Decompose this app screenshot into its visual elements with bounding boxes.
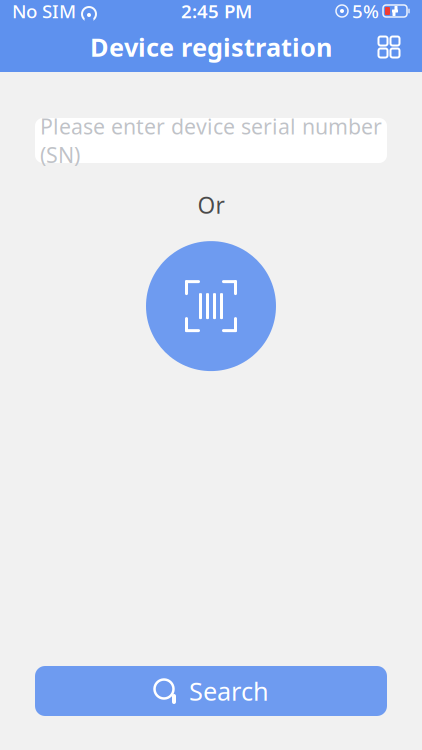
button[interactable]: Apps <box>367 25 411 69</box>
staticText: Search <box>189 674 269 708</box>
staticText: 2:45 PM <box>181 0 252 23</box>
button[interactable]: Search <box>35 666 387 716</box>
button[interactable]: Please enter device serial number (SN) <box>35 118 387 163</box>
staticText: No SIM <box>12 0 76 23</box>
staticText: Please enter device serial number (SN) <box>40 112 382 169</box>
button[interactable]: Scan barcode <box>146 241 276 371</box>
staticText: Or <box>197 190 224 220</box>
staticText: 5% <box>352 0 379 23</box>
staticText: Device registration <box>90 30 332 64</box>
